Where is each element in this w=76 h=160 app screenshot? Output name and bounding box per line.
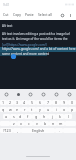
staticText: , (17, 128, 18, 133)
button[interactable]: 8 (52, 100, 60, 105)
button[interactable]: q (0, 107, 7, 112)
button[interactable]: s (10, 114, 17, 119)
staticText: v (36, 121, 38, 126)
staticText: Alt text involves editing a post with a … (2, 32, 76, 36)
button[interactable]: c (25, 121, 33, 126)
button[interactable]: d (17, 114, 24, 119)
button[interactable]: Copy (11, 9, 23, 20)
staticText: y (39, 107, 41, 112)
button[interactable]: 6 (36, 100, 44, 105)
button[interactable]: 1 (0, 100, 7, 105)
staticText: u (47, 107, 50, 112)
button[interactable]: h (40, 114, 48, 119)
button[interactable]: j (48, 114, 56, 119)
staticText: https://www.google.com/ and a lot of con… (2, 47, 76, 51)
staticText: [url](https://www.google.com/) (2, 43, 47, 47)
staticText: c (28, 121, 30, 126)
button[interactable]: f (24, 114, 32, 119)
staticText: d (19, 114, 22, 119)
staticText: h (43, 114, 46, 119)
button[interactable]: m (57, 121, 65, 126)
staticText: 0 (71, 100, 74, 105)
button[interactable]: p (68, 107, 76, 112)
staticText: s (13, 114, 15, 119)
staticText: 4 (23, 100, 26, 105)
button[interactable]: ?123 (0, 128, 13, 133)
staticText: 2 (9, 100, 12, 105)
button[interactable]: w (7, 107, 14, 112)
button[interactable]: Clipboard (0, 89, 12, 99)
button[interactable]: b (41, 121, 49, 126)
staticText: i (56, 107, 57, 112)
button[interactable]: Emoji (12, 89, 24, 99)
staticText: n (52, 121, 55, 126)
staticText: Cut (3, 12, 9, 17)
staticText: p (71, 107, 74, 112)
button[interactable]: 0 (68, 100, 76, 105)
button[interactable]: 7 (44, 100, 52, 105)
button[interactable]: Translate (58, 11, 66, 19)
staticText: English (32, 128, 45, 133)
button[interactable]: 5 (28, 100, 36, 105)
button[interactable]: Select all (36, 9, 54, 20)
button[interactable]: o (60, 107, 68, 112)
staticText: text as it. An image of the would be ite… (2, 37, 68, 41)
button[interactable]: z (10, 121, 17, 126)
button[interactable]: v (33, 121, 41, 126)
staticText: b (44, 121, 47, 126)
staticText: q (2, 107, 5, 112)
button[interactable]: English (21, 128, 55, 133)
staticText: m (59, 121, 63, 126)
button[interactable]: a (3, 114, 10, 119)
button[interactable]: Voice (50, 89, 63, 99)
staticText: 9:41 (3, 3, 10, 7)
button[interactable]: . (55, 128, 63, 133)
button[interactable]: 2 (7, 100, 14, 105)
staticText: t (31, 107, 33, 112)
button[interactable]: Settings (37, 89, 50, 99)
staticText: r (24, 107, 26, 112)
button[interactable]: 9 (60, 100, 68, 105)
button[interactable]: y (36, 107, 44, 112)
button[interactable]: u (44, 107, 52, 112)
staticText: 6 (39, 100, 42, 105)
button[interactable]: i (52, 107, 60, 112)
button[interactable]: More options (66, 11, 74, 19)
staticText: o (63, 107, 66, 112)
staticText: g (35, 114, 38, 119)
staticText: 9 (63, 100, 66, 105)
staticText: Alt text (2, 24, 13, 28)
button[interactable]: Search (63, 89, 76, 99)
staticText: a (5, 114, 8, 119)
button[interactable]: Cut (1, 9, 11, 20)
staticText: Paste (25, 12, 34, 17)
button[interactable]: GIF (24, 89, 37, 99)
staticText: f (27, 114, 29, 119)
staticText: 7 (47, 100, 50, 105)
button[interactable]: g (32, 114, 40, 119)
button[interactable]: x (17, 121, 25, 126)
button[interactable]: 3 (14, 100, 21, 105)
staticText: x (20, 121, 22, 126)
staticText: k (59, 114, 61, 119)
staticText: . (59, 128, 60, 133)
staticText: w (9, 107, 12, 112)
button[interactable]: Paste (23, 9, 36, 20)
button[interactable]: l (64, 114, 72, 119)
staticText: 1 (2, 100, 5, 105)
staticText: some content and more content (2, 52, 49, 56)
button[interactable]: r (21, 107, 28, 112)
staticText: Select all (38, 12, 52, 17)
button[interactable]: t (28, 107, 36, 112)
button[interactable]: , (13, 128, 21, 133)
staticText: 3 (16, 100, 19, 105)
button[interactable]: k (56, 114, 64, 119)
button[interactable]: n (49, 121, 57, 126)
button[interactable]: 4 (21, 100, 28, 105)
staticText: 8 (55, 100, 58, 105)
staticText: z (13, 121, 15, 126)
button[interactable]: e (14, 107, 21, 112)
